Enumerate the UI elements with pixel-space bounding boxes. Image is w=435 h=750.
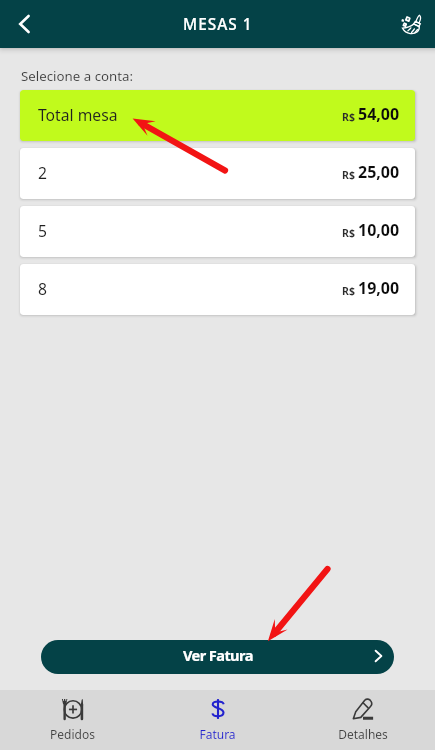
staticText: Ver Fatura [183, 645, 253, 665]
staticText: 10,00 [358, 219, 400, 241]
staticText: MESAS 1 [183, 14, 253, 35]
button[interactable]: Back [0, 0, 48, 48]
button[interactable]: Total mesa [20, 90, 415, 141]
staticText: R$ [342, 168, 355, 182]
staticText: Pedidos [50, 726, 95, 742]
staticText: R$ [342, 110, 355, 124]
staticText: 19,00 [358, 277, 400, 299]
button[interactable]: 5 [20, 206, 415, 257]
button[interactable]: Clean table [387, 0, 435, 48]
staticText: Fatura [199, 726, 236, 742]
staticText: R$ [342, 284, 355, 298]
staticText: 54,00 [358, 103, 400, 125]
staticText: Selecione a conta: [21, 67, 134, 85]
button[interactable]: Fatura [145, 690, 290, 750]
staticText: 2 [38, 162, 47, 183]
staticText: R$ [342, 226, 355, 240]
button[interactable]: Detalhes [290, 690, 435, 750]
button[interactable]: 8 [20, 264, 415, 315]
staticText: 25,00 [358, 161, 400, 183]
staticText: Total mesa [38, 104, 118, 125]
button[interactable]: Ver Fatura [41, 640, 394, 674]
button[interactable]: Pedidos [0, 690, 145, 750]
staticText: Detalhes [338, 726, 388, 742]
staticText: 5 [38, 220, 47, 241]
staticText: 8 [38, 278, 47, 299]
button[interactable]: 2 [20, 148, 415, 199]
